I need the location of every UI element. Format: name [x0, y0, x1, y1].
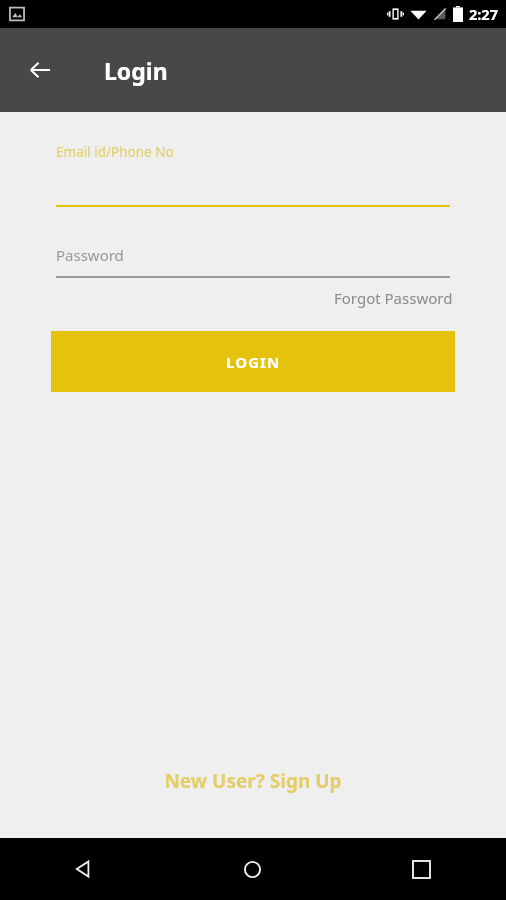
button[interactable]: Home: [168, 838, 337, 900]
staticText: Forgot Password: [334, 288, 453, 308]
staticText: 2:27: [469, 4, 498, 24]
button[interactable]: Forgot Password: [332, 286, 455, 310]
staticText: New User? Sign Up: [164, 768, 342, 794]
button[interactable]: LOGIN: [51, 331, 455, 392]
staticText: Login: [104, 55, 168, 86]
button[interactable]: New User? Sign Up: [152, 762, 354, 800]
staticText: LOGIN: [226, 352, 281, 372]
button[interactable]: Recent apps: [337, 838, 506, 900]
button[interactable]: Password: [0, 245, 506, 278]
button[interactable]: Back: [16, 46, 64, 94]
button[interactable]: Email id/Phone No: [0, 143, 506, 207]
staticText: Password: [56, 245, 124, 265]
staticText: Email id/Phone No: [56, 143, 174, 161]
button[interactable]: Back: [0, 838, 168, 900]
